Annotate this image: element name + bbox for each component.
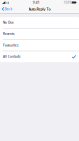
staticText: Recents <box>3 32 14 36</box>
staticText: 9:41 <box>33 0 40 5</box>
button[interactable]: Back <box>0 5 16 13</box>
button[interactable]: All Contacts <box>0 51 79 62</box>
button[interactable]: No One <box>0 17 79 28</box>
staticText: Favourites <box>3 43 18 47</box>
button[interactable]: Favourites <box>0 40 79 51</box>
staticText: All Contacts <box>3 55 20 59</box>
button[interactable]: Recents <box>0 28 79 40</box>
staticText: Auto-Reply To <box>28 6 50 11</box>
staticText: No One <box>3 20 14 24</box>
staticText: Back <box>5 7 13 11</box>
staticText: 100% <box>63 0 71 4</box>
